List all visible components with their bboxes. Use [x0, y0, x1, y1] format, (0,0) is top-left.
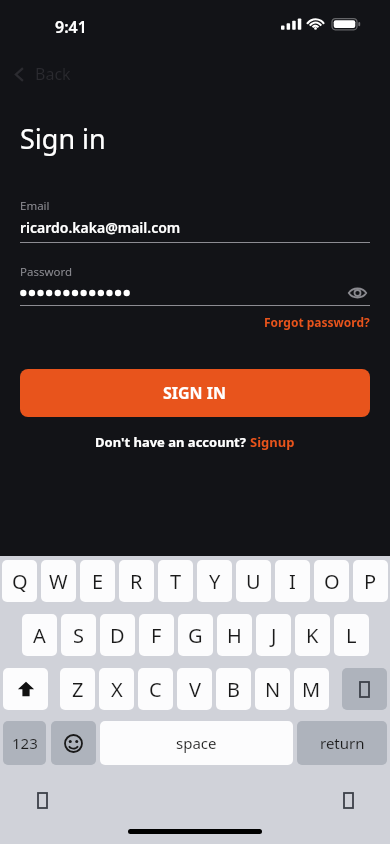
button[interactable]: Q — [2, 560, 37, 602]
button[interactable]: R — [119, 560, 154, 602]
button[interactable]: Signup — [250, 433, 295, 451]
button[interactable]: P — [353, 560, 388, 602]
button[interactable]: Y — [197, 560, 232, 602]
staticText: M — [302, 676, 321, 703]
staticText: J — [271, 622, 277, 649]
button[interactable]: T — [158, 560, 193, 602]
button[interactable]: M — [294, 668, 329, 710]
button[interactable]: L — [334, 614, 369, 656]
staticText: Don't have an account? — [95, 433, 250, 451]
staticText: Password — [20, 264, 73, 280]
button[interactable]: Emoji — [51, 721, 96, 765]
button[interactable]: V — [177, 668, 212, 710]
button[interactable]: SIGN IN — [20, 369, 370, 417]
button[interactable]: Z — [60, 668, 95, 710]
button[interactable]: O — [314, 560, 349, 602]
staticText: 123 — [12, 733, 38, 753]
staticText: T — [170, 568, 182, 595]
staticText: O — [324, 568, 340, 595]
staticText: E — [92, 568, 104, 595]
button[interactable]: return — [297, 721, 387, 765]
staticText: Q — [12, 568, 28, 595]
staticText: X — [111, 676, 123, 703]
button[interactable]: Backspace — [342, 668, 387, 710]
staticText: S — [73, 622, 84, 649]
staticText: Back — [35, 63, 71, 85]
button[interactable] — [3, 668, 48, 710]
staticText: 9:41 — [55, 16, 87, 38]
button[interactable]: G — [178, 614, 213, 656]
staticText: SIGN IN — [163, 382, 227, 404]
staticText: R — [130, 568, 143, 595]
button[interactable]: space — [100, 721, 293, 765]
button[interactable]: B — [216, 668, 251, 710]
staticText: V — [189, 676, 201, 703]
button[interactable]: S — [61, 614, 96, 656]
staticText: space — [176, 733, 217, 753]
button[interactable]: Dictation — [30, 788, 54, 812]
button[interactable]: 123 — [3, 721, 46, 765]
button[interactable]: D — [100, 614, 135, 656]
staticText: Forgot password? — [264, 314, 370, 330]
staticText: Y — [209, 568, 221, 595]
staticText: A — [33, 622, 46, 649]
staticText: Z — [72, 676, 84, 703]
button[interactable]: A — [22, 614, 57, 656]
staticText: U — [246, 568, 261, 595]
staticText: F — [151, 622, 162, 649]
staticText: W — [49, 568, 68, 595]
staticText: N — [265, 676, 281, 703]
staticText: B — [227, 676, 240, 703]
button[interactable]: Show password — [344, 283, 370, 302]
staticText: Sign in — [20, 120, 106, 157]
button[interactable]: J — [256, 614, 291, 656]
staticText: G — [188, 622, 203, 649]
staticText: L — [346, 622, 357, 649]
button[interactable]: N — [255, 668, 290, 710]
staticText: return — [320, 733, 365, 753]
button[interactable]: Back — [0, 61, 87, 87]
staticText: K — [306, 622, 319, 649]
button[interactable]: Keyboard switch — [336, 788, 360, 812]
button[interactable]: I — [275, 560, 310, 602]
staticText: H — [227, 622, 242, 649]
button[interactable]: X — [99, 668, 134, 710]
staticText: D — [110, 622, 125, 649]
button[interactable]: U — [236, 560, 271, 602]
button[interactable]: F — [139, 614, 174, 656]
button[interactable]: K — [295, 614, 330, 656]
button[interactable]: W — [41, 560, 76, 602]
staticText: P — [364, 568, 377, 595]
staticText: C — [149, 676, 162, 703]
button[interactable]: Forgot password? — [264, 314, 370, 330]
button[interactable]: E — [80, 560, 115, 602]
button[interactable]: H — [217, 614, 252, 656]
button[interactable]: C — [138, 668, 173, 710]
staticText: Signup — [250, 433, 295, 451]
staticText: Email — [20, 198, 50, 214]
staticText: ricardo.kaka@mail.com — [20, 218, 181, 237]
staticText: I — [289, 568, 296, 595]
